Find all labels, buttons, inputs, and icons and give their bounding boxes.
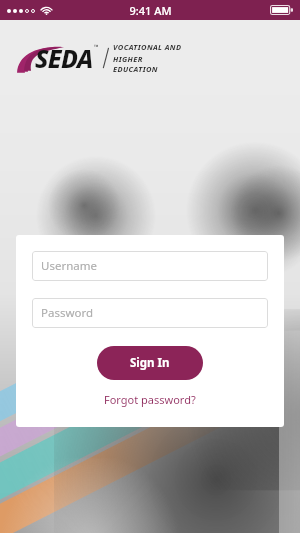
button[interactable]: Username: [32, 251, 268, 281]
staticText: Sign In: [130, 355, 170, 371]
button[interactable]: Sign In: [97, 346, 203, 380]
staticText: HIGHER EDUCATION: [113, 54, 186, 74]
button[interactable]: Password: [32, 298, 268, 328]
staticText: VOCATIONAL AND: [113, 42, 182, 52]
staticText: 9:41 AM: [129, 3, 172, 18]
staticText: Forgot password?: [104, 392, 196, 407]
staticText: Password: [41, 305, 94, 321]
staticText: ™: [94, 43, 99, 51]
staticText: Username: [41, 258, 97, 274]
staticText: SEDA: [35, 41, 93, 75]
button[interactable]: Forgot password?: [98, 389, 202, 410]
